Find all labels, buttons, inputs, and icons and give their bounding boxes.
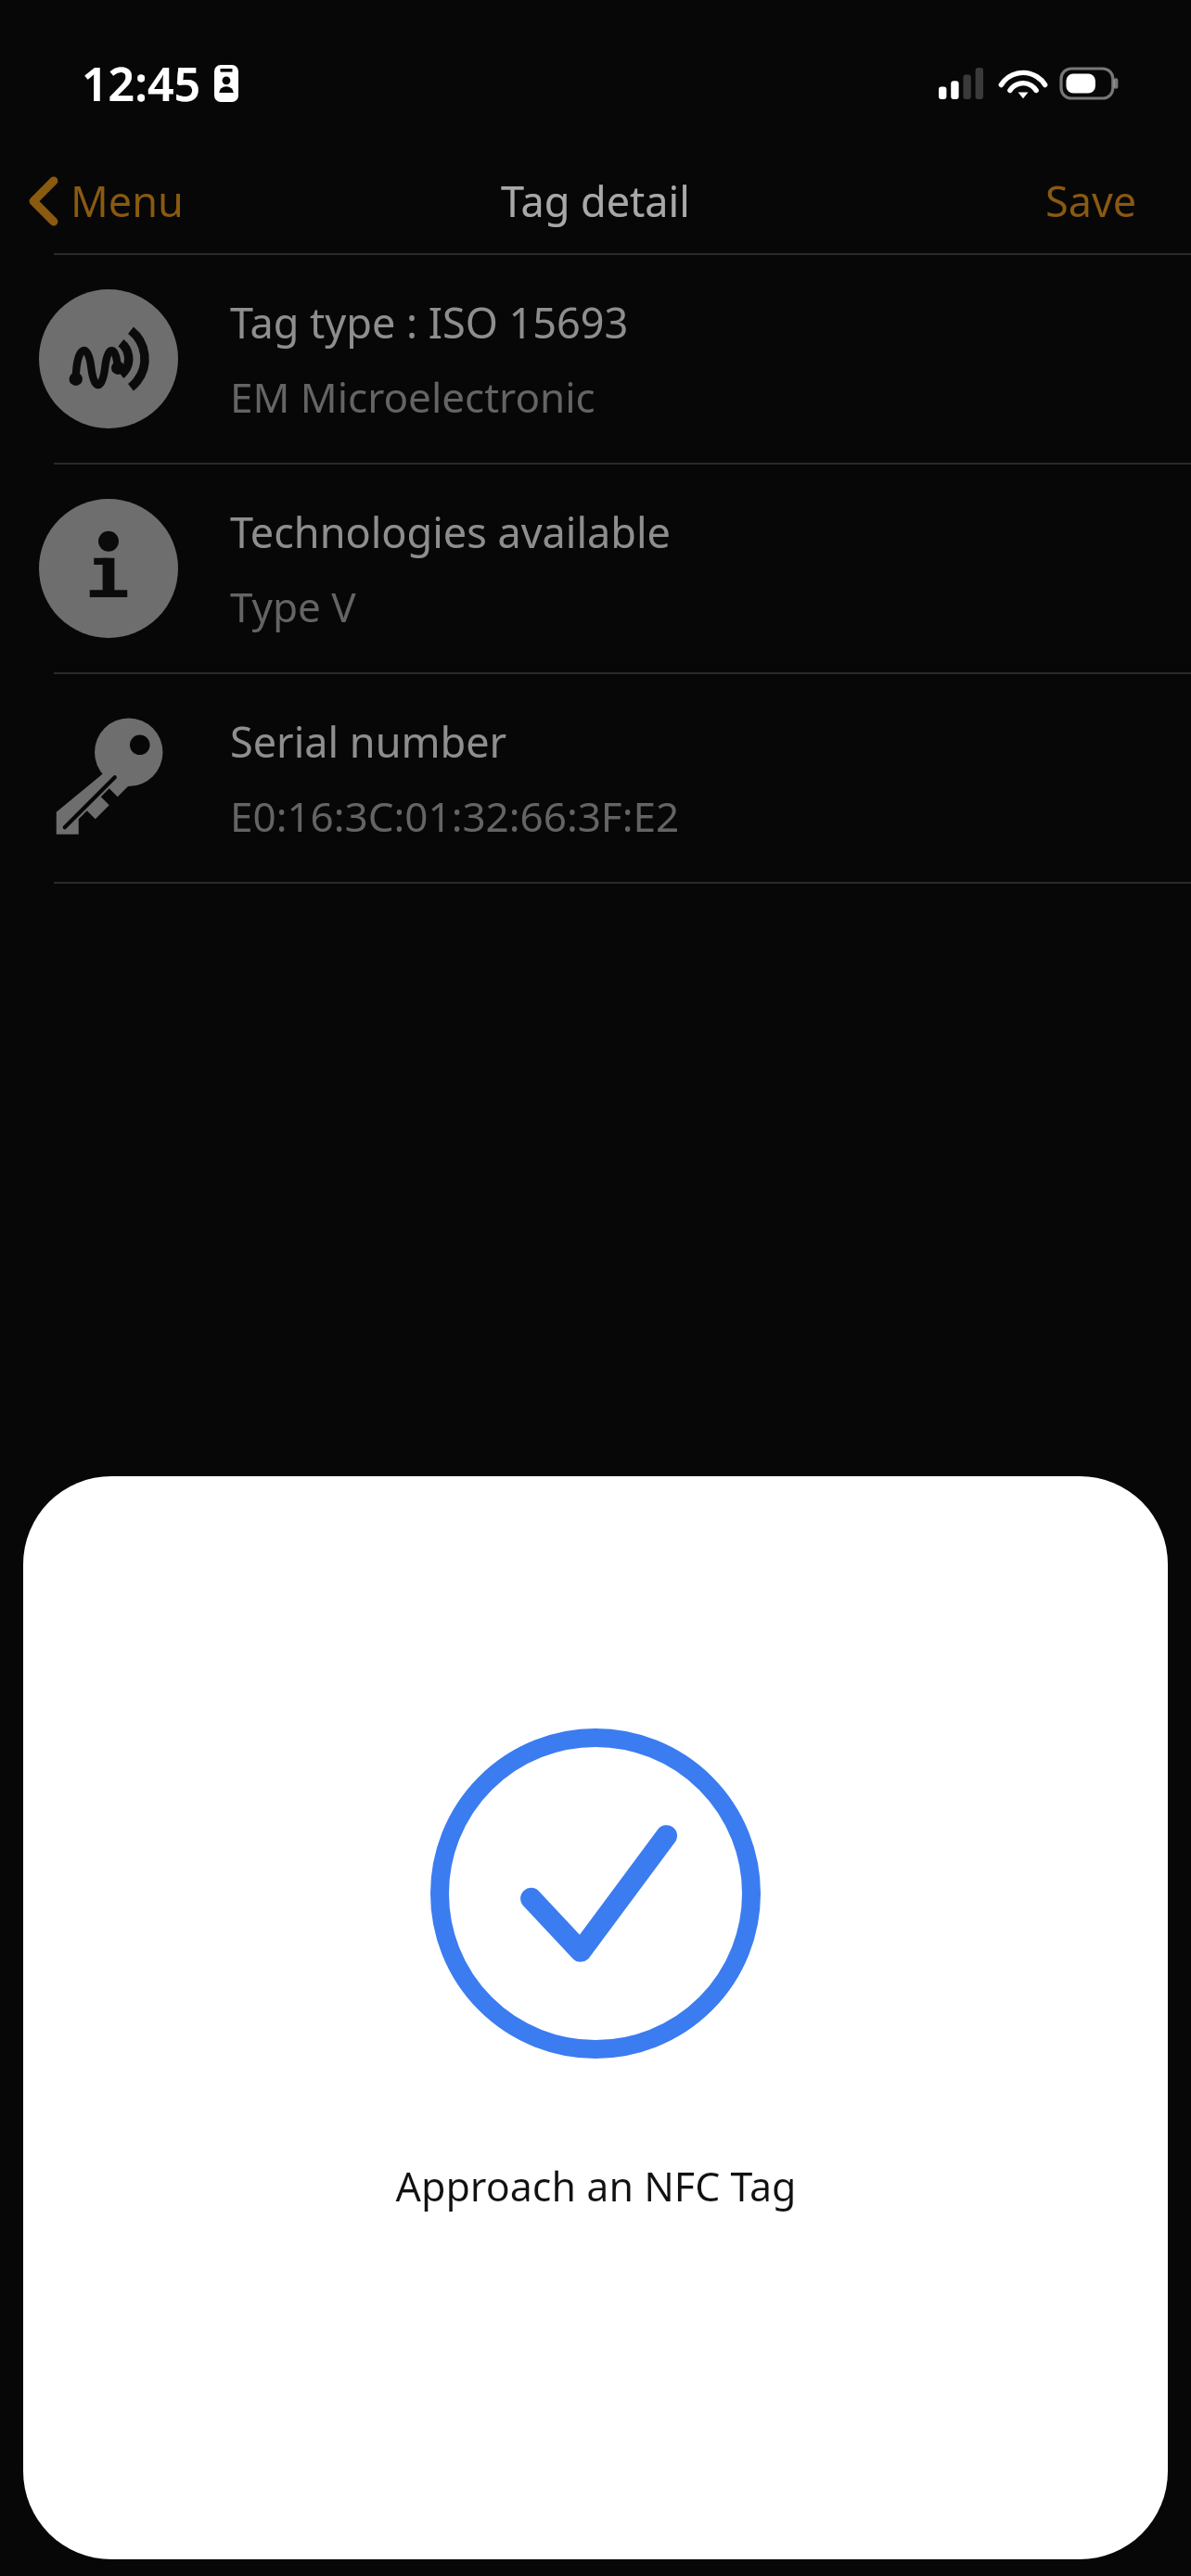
button[interactable]: Technologies available [0,465,1191,672]
button[interactable]: Tag type : ISO 15693 [0,255,1191,463]
staticText: E0:16:3C:01:32:66:3F:E2 [230,788,680,844]
staticText: Tag type : ISO 15693 [230,294,629,351]
button[interactable]: Menu [0,161,202,240]
staticText: Approach an NFC Tag [395,2159,797,2213]
staticText: Type V [230,579,356,634]
staticText: Save [1045,172,1137,229]
button[interactable]: Serial number [0,674,1191,882]
staticText: Serial number [230,713,507,770]
staticText: 12:45 [82,52,201,115]
staticText: Tag detail [501,172,690,229]
staticText: EM Microelectronic [230,369,595,425]
staticText: Technologies available [230,504,671,560]
staticText: Menu [70,172,184,229]
button[interactable]: Save [1023,161,1191,240]
